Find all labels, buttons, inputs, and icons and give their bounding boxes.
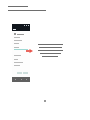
button[interactable]: Recents xyxy=(25,78,28,81)
button[interactable]: Back xyxy=(14,78,17,81)
button[interactable]: Callout arrow xyxy=(26,49,33,53)
button[interactable]: Home xyxy=(20,78,23,81)
